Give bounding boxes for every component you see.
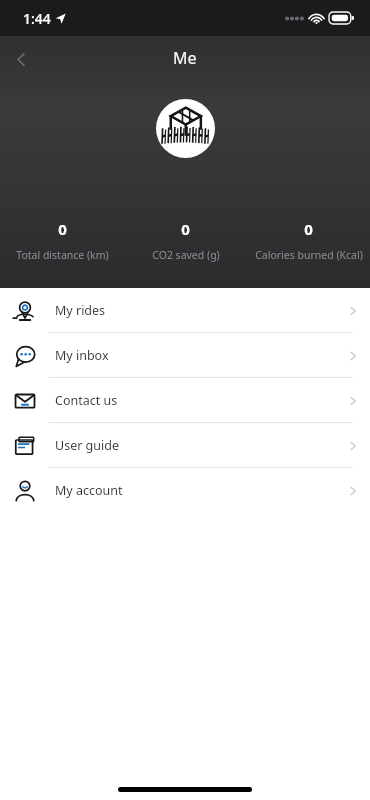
staticText: 0	[181, 219, 190, 239]
other: Building logo	[156, 99, 215, 158]
staticText: Total distance (km)	[16, 248, 109, 262]
staticText: User guide	[55, 437, 119, 454]
staticText: Contact us	[55, 392, 118, 409]
staticText: Me	[173, 47, 197, 69]
button[interactable]: User guide	[0, 423, 370, 468]
button[interactable]: My account	[0, 468, 370, 513]
staticText: My inbox	[55, 347, 109, 364]
staticText: 0	[58, 219, 67, 239]
staticText: 0	[304, 219, 313, 239]
button[interactable]: My inbox	[0, 333, 370, 378]
button[interactable]: My rides	[0, 288, 370, 333]
staticText: My account	[55, 482, 123, 499]
staticText: CO2 saved (g)	[152, 248, 220, 262]
button[interactable]: Contact us	[0, 378, 370, 423]
staticText: 1:44	[23, 9, 51, 28]
staticText: Calories burned (Kcal)	[255, 248, 363, 262]
staticText: My rides	[55, 302, 106, 319]
button[interactable]: Back	[2, 40, 40, 78]
